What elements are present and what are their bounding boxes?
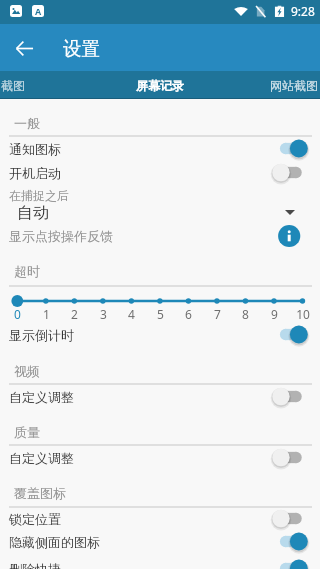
staticText: 锁定位置 (9, 511, 61, 527)
staticText: A (35, 5, 42, 17)
staticText: 质量 (14, 424, 40, 440)
staticText: 截图 (1, 78, 25, 93)
staticText: 2 (71, 306, 78, 320)
staticText: 视频 (14, 363, 40, 379)
button[interactable]: 在捕捉之后 (0, 185, 320, 221)
staticText: 1 (43, 306, 50, 320)
staticText: 覆盖图标 (14, 485, 66, 501)
button[interactable]: 显示倒计时 (0, 323, 320, 346)
staticText: 超时 (14, 263, 40, 279)
staticText: 自定义调整 (9, 450, 74, 466)
button[interactable]: 自定义调整 (0, 385, 320, 408)
button[interactable]: 网站截图 (244, 71, 320, 99)
staticText: 自动 (17, 203, 49, 223)
button[interactable]: 通知图标 (0, 137, 320, 160)
staticText: 自定义调整 (9, 389, 74, 405)
staticText: 删除快捷 (9, 561, 61, 569)
button[interactable]: 锁定位置 (0, 507, 320, 530)
staticText: 一般 (14, 115, 40, 131)
button[interactable]: 自定义调整 (0, 446, 320, 469)
button[interactable]: Back (4, 28, 44, 68)
staticText: 9 (271, 306, 278, 320)
staticText: 3 (100, 306, 107, 320)
button[interactable]: 显示点按操作反馈 (0, 224, 320, 248)
button[interactable]: 开机启动 (0, 161, 320, 184)
button[interactable]: 删除快捷 (0, 557, 320, 569)
staticText: 在捕捉之后 (9, 188, 69, 203)
staticText: 5 (157, 306, 164, 320)
staticText: 开机启动 (9, 165, 61, 181)
staticText: 屏幕记录 (136, 78, 184, 93)
staticText: 6 (185, 306, 192, 320)
staticText: 显示倒计时 (9, 327, 74, 343)
button[interactable]: 屏幕记录 (105, 71, 215, 99)
staticText: 0 (14, 306, 21, 320)
staticText: 7 (214, 306, 221, 320)
staticText: 10 (296, 306, 310, 320)
staticText: 8 (242, 306, 249, 320)
staticText: 通知图标 (9, 141, 61, 157)
staticText: 显示点按操作反馈 (9, 228, 113, 244)
staticText: 设置 (63, 37, 100, 60)
staticText: 网站截图 (270, 78, 318, 93)
staticText: 9:28 (291, 3, 315, 19)
staticText: 隐藏侧面的图标 (9, 534, 100, 550)
button[interactable]: 隐藏侧面的图标 (0, 530, 320, 553)
staticText: 4 (128, 306, 135, 320)
button[interactable]: 截图 (0, 71, 48, 99)
